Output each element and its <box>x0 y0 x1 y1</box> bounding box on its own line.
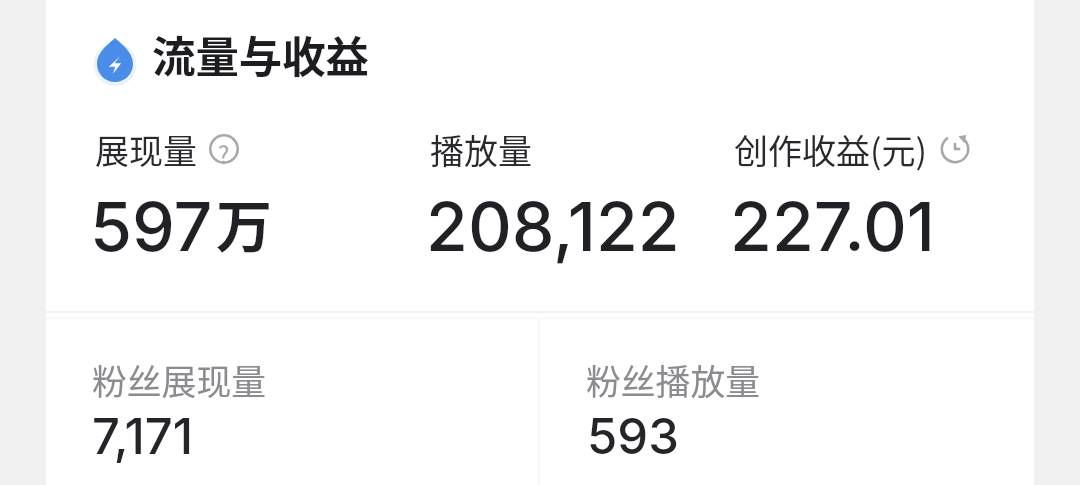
button[interactable]: 展现量 <box>88 119 388 274</box>
staticText: 593 <box>587 407 679 466</box>
staticText: 播放量 <box>430 125 532 174</box>
staticText: 208,122 <box>426 185 680 267</box>
button[interactable]: 粉丝播放量 <box>541 319 1035 485</box>
staticText: 7,171 <box>92 407 194 466</box>
button[interactable]: 粉丝展现量 <box>46 319 538 485</box>
staticText: 万 <box>216 182 272 263</box>
staticText: 流量与收益 <box>152 23 369 86</box>
button[interactable]: 播放量 <box>423 119 718 274</box>
staticText: 227.01 <box>730 185 936 267</box>
staticText: 创作收益(元) <box>734 125 927 174</box>
button[interactable]: 创作收益(元) <box>727 119 987 274</box>
staticText: 展现量 <box>95 125 197 174</box>
staticText: 粉丝展现量 <box>92 355 266 405</box>
button[interactable]: 收益记录 <box>934 128 976 170</box>
button[interactable]: 流量与收益 <box>80 13 400 95</box>
staticText: ? <box>218 136 230 166</box>
staticText: 粉丝播放量 <box>586 355 760 405</box>
staticText: 597 <box>90 185 213 267</box>
button[interactable]: 展现量说明 <box>203 128 245 170</box>
